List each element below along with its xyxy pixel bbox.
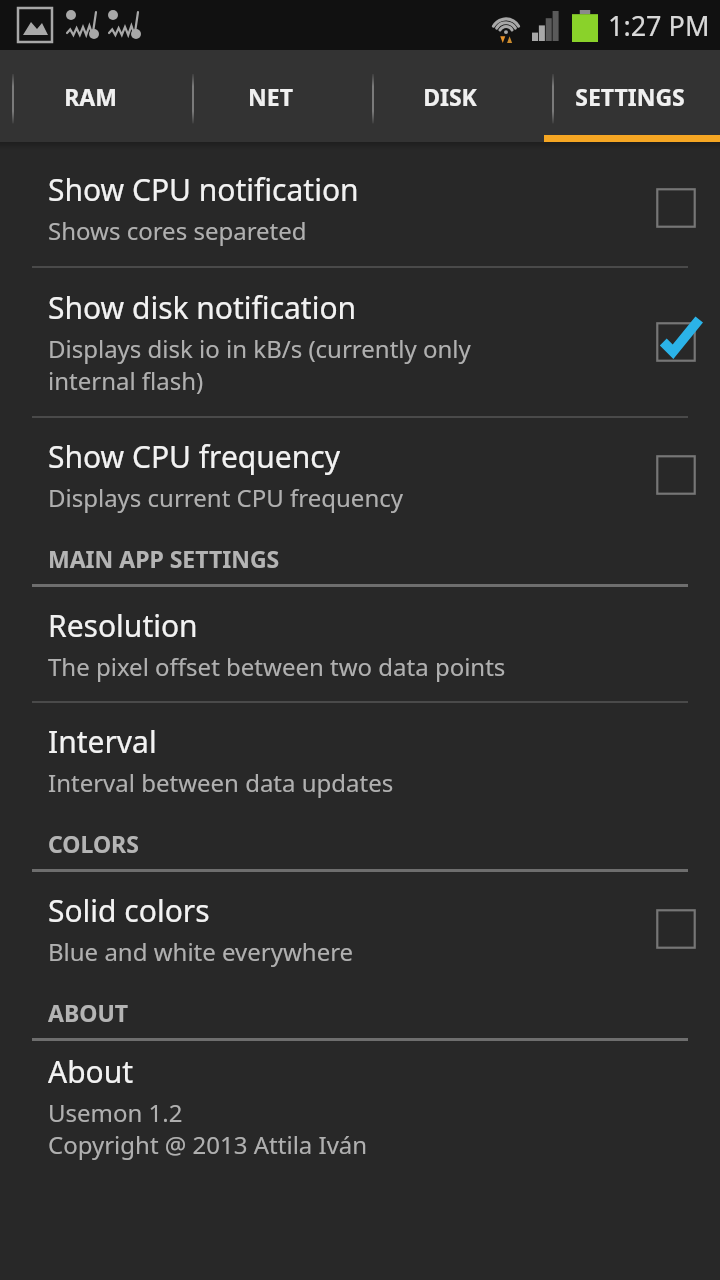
staticText: Show CPU frequency bbox=[48, 436, 340, 477]
staticText: Interval between data updates bbox=[48, 766, 394, 799]
staticText: Show CPU notification bbox=[48, 169, 359, 210]
staticText: DISK bbox=[423, 81, 477, 112]
button[interactable]: NET bbox=[180, 50, 360, 142]
staticText: COLORS bbox=[48, 828, 139, 859]
button[interactable]: About bbox=[0, 1041, 720, 1171]
button[interactable]: DISK bbox=[360, 50, 540, 142]
button[interactable]: Solid colors bbox=[0, 872, 720, 986]
staticText: Blue and white everywhere bbox=[48, 935, 354, 968]
button[interactable]: Show disk notification bbox=[632, 268, 720, 416]
staticText: Show disk notification bbox=[48, 287, 357, 328]
button[interactable]: Solid colors bbox=[632, 872, 720, 986]
button[interactable]: Interval bbox=[0, 703, 720, 817]
staticText: ABOUT bbox=[48, 997, 129, 1028]
staticText: NET bbox=[248, 81, 293, 112]
staticText: Shows cores separeted bbox=[48, 214, 307, 247]
staticText: Displays current CPU frequency bbox=[48, 481, 403, 514]
staticText: Solid colors bbox=[48, 890, 210, 931]
button[interactable]: Show disk notification bbox=[0, 268, 720, 416]
button[interactable]: Show CPU notification bbox=[0, 150, 720, 266]
button[interactable]: SETTINGS bbox=[540, 50, 720, 142]
button[interactable]: Resolution bbox=[0, 587, 720, 701]
staticText: Usemon 1.2 Copyright @ 2013 Attila Iván bbox=[48, 1096, 368, 1161]
button[interactable]: Show CPU frequency bbox=[632, 418, 720, 532]
staticText: Displays disk io in kB/s (currently only… bbox=[48, 332, 471, 397]
staticText: The pixel offset between two data points bbox=[48, 650, 506, 683]
button[interactable]: Show CPU frequency bbox=[0, 418, 720, 532]
staticText: SETTINGS bbox=[575, 81, 685, 112]
staticText: MAIN APP SETTINGS bbox=[48, 543, 280, 574]
staticText: About bbox=[48, 1051, 134, 1092]
staticText: RAM bbox=[64, 81, 117, 112]
button[interactable]: RAM bbox=[0, 50, 180, 142]
staticText: 1:27 PM bbox=[608, 7, 710, 44]
staticText: Interval bbox=[48, 721, 157, 762]
button[interactable]: Show CPU notification bbox=[632, 150, 720, 266]
staticText: Resolution bbox=[48, 605, 198, 646]
